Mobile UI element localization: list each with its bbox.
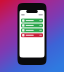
button[interactable] <box>21 19 43 22</box>
button[interactable] <box>21 23 43 27</box>
button[interactable] <box>21 28 43 32</box>
button[interactable] <box>21 33 43 37</box>
